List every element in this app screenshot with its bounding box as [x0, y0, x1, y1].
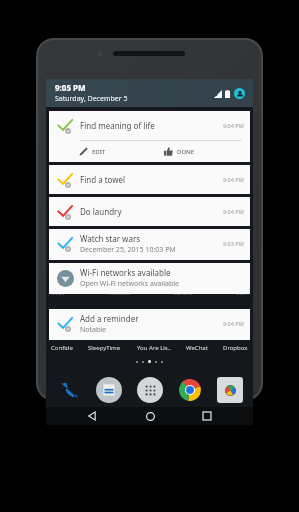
button[interactable]: All apps: [137, 377, 163, 403]
staticText: Watch star wars: [80, 233, 141, 244]
staticText: DONE: [177, 148, 195, 156]
staticText: Find meaning of life: [80, 120, 155, 131]
staticText: Facebook: [108, 290, 131, 297]
button[interactable]: Watch star wars: [49, 229, 250, 260]
button[interactable]: DONE: [164, 141, 250, 162]
button[interactable]: Recents: [195, 407, 219, 425]
staticText: Confide: [51, 344, 73, 352]
staticText: 9:04 PM: [223, 122, 244, 129]
button[interactable]: Phone: [56, 377, 82, 403]
button[interactable]: Wi-Fi networks available: [49, 263, 250, 294]
staticText: Dropbox: [223, 344, 248, 352]
button[interactable]: Chrome: [177, 377, 203, 403]
staticText: Add a reminder: [80, 313, 139, 324]
button[interactable]: Back: [80, 407, 104, 425]
staticText: SleepyTime: [88, 344, 121, 352]
button[interactable]: Find a towel: [49, 165, 250, 194]
staticText: Find a towel: [80, 174, 126, 185]
staticText: 9:05 PM: [55, 82, 86, 93]
staticText: Wi-Fi networks available: [80, 267, 171, 278]
staticText: 9:03 PM: [223, 240, 244, 247]
button[interactable]: Find meaning of life: [49, 111, 250, 162]
button[interactable]: Home: [138, 407, 162, 425]
staticText: Mariano: [173, 290, 193, 297]
staticText: 9:04 PM: [223, 208, 244, 215]
staticText: 9:04 PM: [223, 320, 244, 327]
staticText: 9:04 PM: [223, 176, 244, 183]
staticText: Uber: [236, 290, 248, 297]
button[interactable]: Camera: [217, 377, 243, 403]
staticText: Open Wi-Fi networks available: [80, 279, 180, 289]
button[interactable]: Add a reminder: [49, 309, 250, 340]
staticText: Stups: [51, 290, 65, 297]
staticText: EDIT: [92, 148, 106, 156]
staticText: December 25, 2015 10:03 PM: [80, 245, 176, 255]
button[interactable]: EDIT: [79, 141, 164, 162]
staticText: WeChat: [186, 344, 208, 352]
button[interactable]: User profile: [234, 88, 245, 99]
staticText: Notable: [80, 325, 107, 335]
staticText: You Are Lis..: [137, 344, 171, 352]
button[interactable]: Messages: [96, 377, 122, 403]
staticText: Saturday, December 5: [55, 94, 128, 104]
button[interactable]: Do laundry: [49, 197, 250, 226]
staticText: Do laundry: [80, 206, 122, 217]
